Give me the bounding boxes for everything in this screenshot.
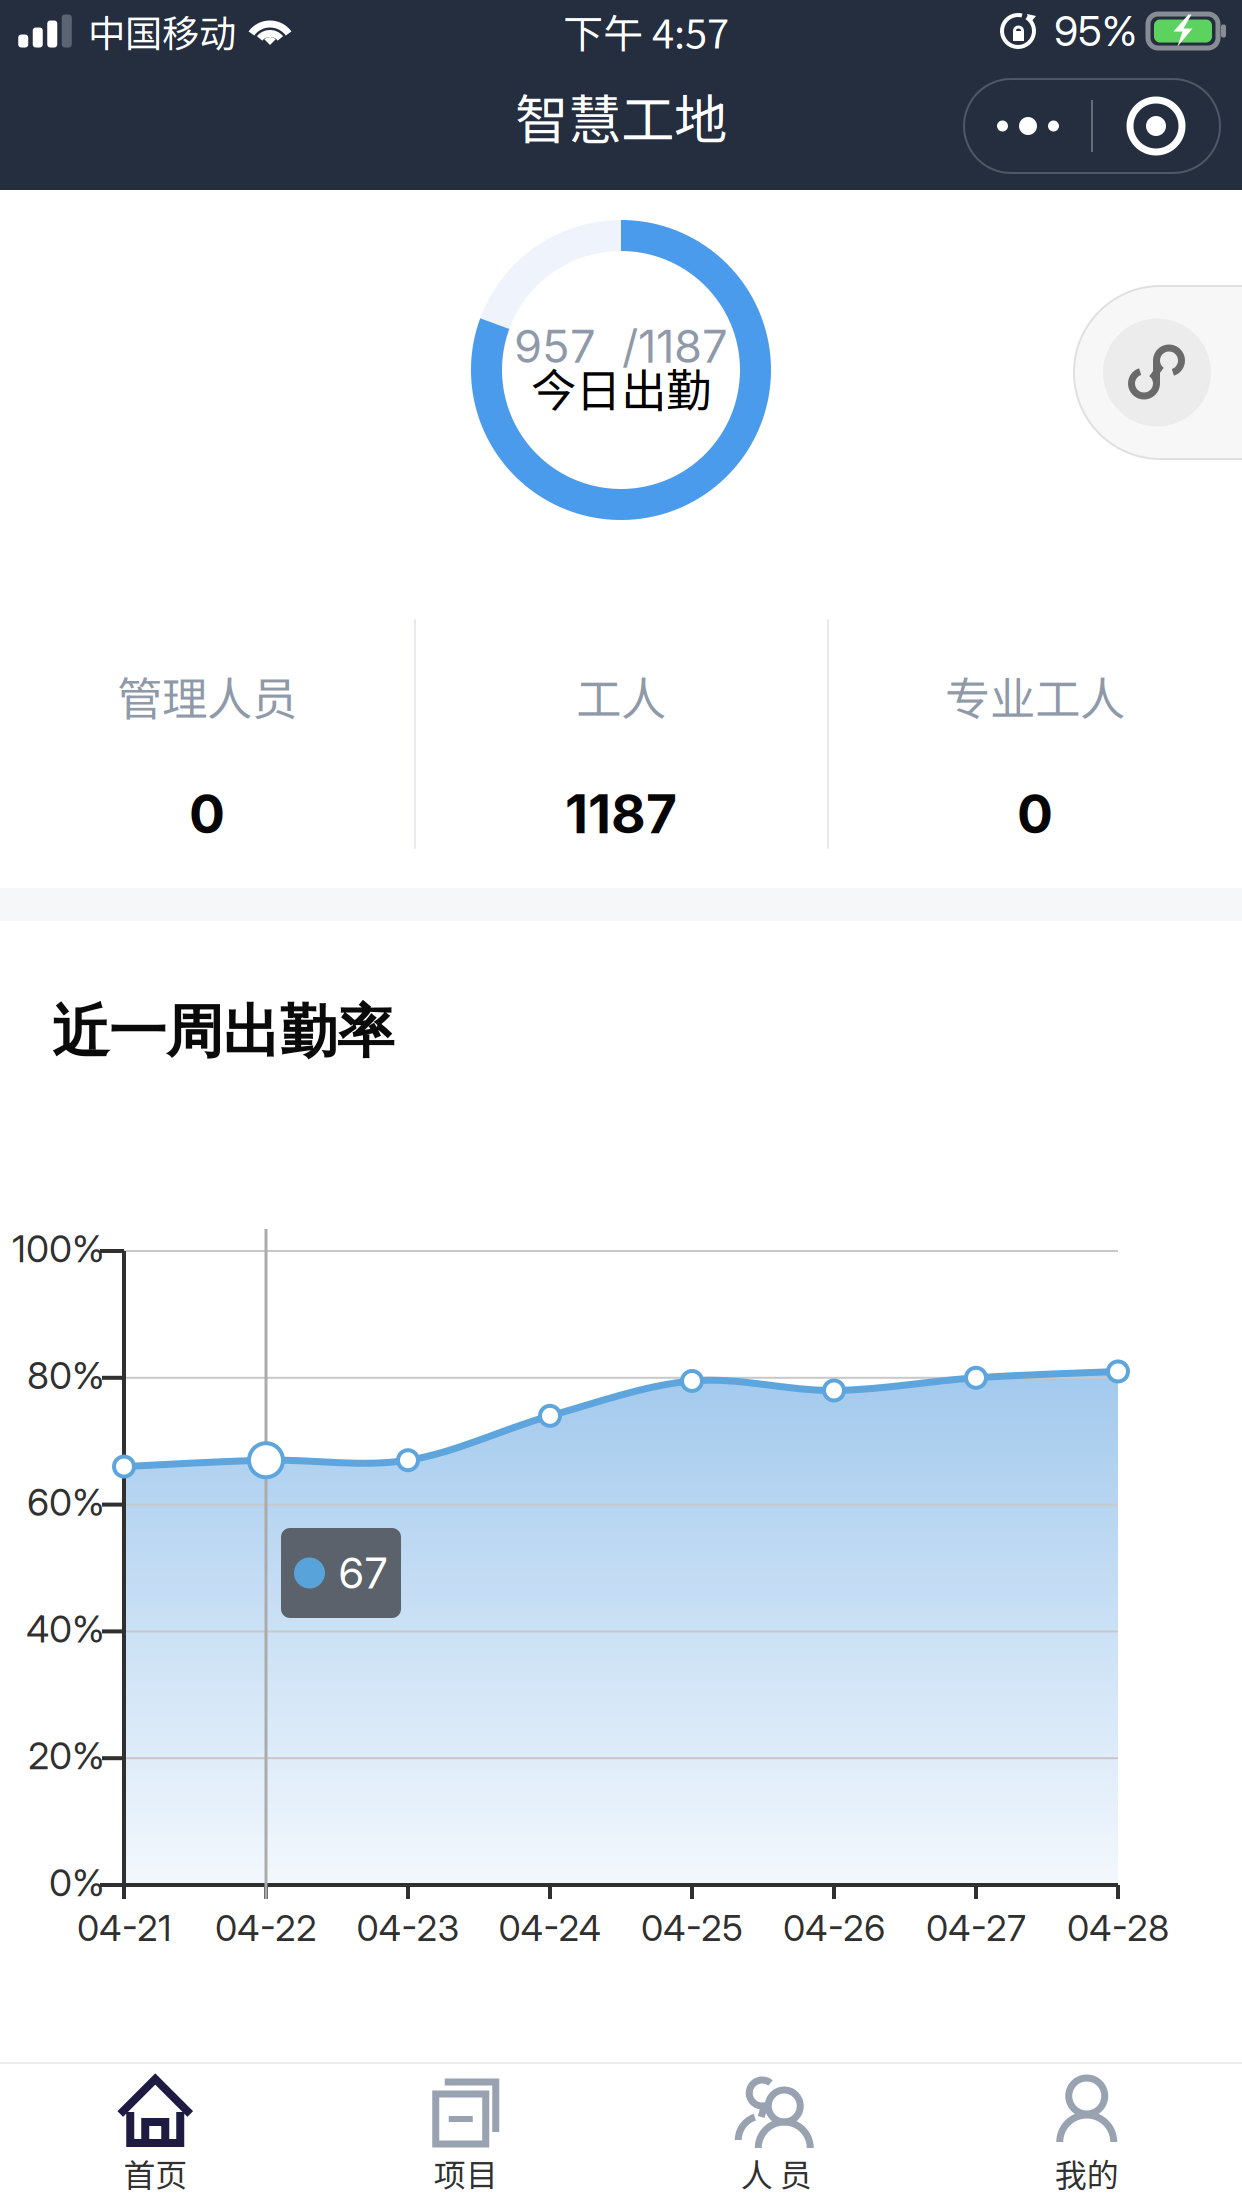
staticText: 04-21 [77, 1906, 171, 1950]
staticText: 04-27 [926, 1906, 1026, 1950]
button[interactable]: 我的 [931, 2064, 1242, 2208]
staticText: 04-23 [356, 1906, 459, 1950]
staticText: 工人 [576, 663, 666, 729]
staticText: 04-28 [1067, 1906, 1169, 1950]
button[interactable]: 项目 [310, 2064, 621, 2208]
staticText: 下午 4:57 [563, 2, 729, 60]
button[interactable]: 专业工人 [828, 637, 1242, 887]
button[interactable]: 首页 [0, 2064, 310, 2208]
staticText: 近一周出勤率 [52, 996, 394, 1068]
staticText: 80% [27, 1353, 105, 1398]
staticText: 项目 [434, 2150, 498, 2196]
staticText: 04-22 [215, 1906, 317, 1950]
staticText: 我的 [1055, 2150, 1119, 2196]
staticText: 专业工人 [945, 663, 1125, 729]
staticText: 60% [27, 1480, 105, 1525]
staticText: 0% [49, 1860, 105, 1905]
staticText: 中国移动 [88, 4, 236, 58]
staticText: 人 员 [741, 2150, 812, 2196]
staticText: 管理人员 [117, 663, 297, 729]
staticText: 957 /1187 [514, 319, 728, 374]
staticText: 智慧工地 [515, 77, 727, 155]
staticText: 100% [12, 1226, 105, 1271]
button[interactable]: Mini program menu [1074, 286, 1242, 459]
staticText: 04-26 [783, 1906, 885, 1950]
staticText: 0 [1017, 781, 1053, 846]
button[interactable]: 管理人员 [0, 637, 414, 887]
staticText: 40% [26, 1606, 105, 1652]
staticText: 04-24 [498, 1906, 601, 1950]
staticText: 95% [1054, 6, 1137, 56]
button[interactable]: More and close [964, 79, 1220, 173]
staticText: 20% [28, 1733, 105, 1778]
staticText: 首页 [123, 2150, 187, 2196]
staticText: 今日出勤 [531, 355, 711, 420]
staticText: 67 [338, 1547, 388, 1599]
button[interactable]: 人 员 [621, 2064, 931, 2208]
staticText: 0 [189, 781, 225, 846]
staticText: 04-25 [641, 1906, 743, 1950]
staticText: 1187 [565, 781, 677, 846]
button[interactable]: 工人 [414, 637, 828, 887]
